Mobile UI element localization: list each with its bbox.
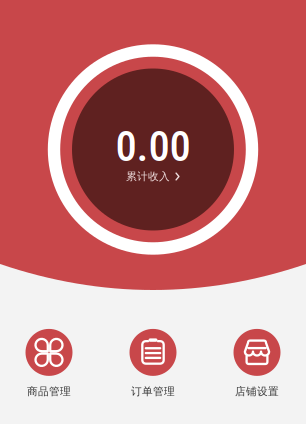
button[interactable]: 累计收入 (126, 170, 180, 183)
staticText: 订单管理 (131, 385, 175, 398)
button[interactable]: 店铺设置 (205, 329, 306, 398)
button[interactable]: 商品管理 (0, 329, 101, 398)
staticText: 店铺设置 (235, 385, 279, 398)
button[interactable]: 订单管理 (101, 329, 205, 398)
staticText: 商品管理 (27, 385, 71, 398)
staticText: 累计收入 (126, 170, 170, 183)
staticText: 0.00 (115, 121, 190, 171)
